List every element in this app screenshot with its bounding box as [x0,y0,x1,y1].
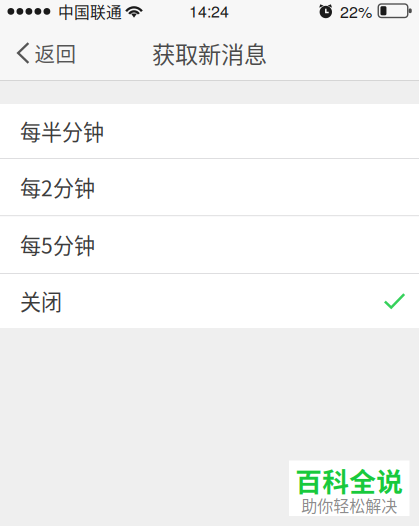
staticText: 14:24 [189,0,229,22]
staticText: 每半分钟 [20,116,104,146]
staticText: 中国联通 [58,0,122,23]
button[interactable]: 返回 [0,0,84,42]
button[interactable]: 每2分钟 [0,0,419,57]
button[interactable]: 每5分钟 [0,0,419,57]
staticText: 百科全说 [295,461,403,499]
button[interactable]: 每半分钟 [0,0,419,54]
staticText: 助你轻松解决 [301,493,397,517]
staticText: 返回 [34,38,76,68]
button[interactable]: 关闭 [0,0,419,54]
staticText: 每5分钟 [20,229,95,260]
staticText: 关闭 [20,285,62,316]
staticText: 22% [340,0,372,22]
staticText: 每2分钟 [20,172,95,202]
staticText: 获取新消息 [152,36,267,70]
